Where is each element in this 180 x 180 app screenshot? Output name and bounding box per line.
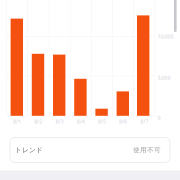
staticText: 使用不可: [133, 146, 161, 154]
staticText: 10,000: [157, 33, 173, 40]
staticText: トレンド: [15, 146, 43, 154]
staticText: 0: [157, 114, 160, 121]
staticText: 8/1: [13, 118, 21, 125]
staticText: 8/7: [140, 118, 148, 125]
staticText: 5,000: [157, 74, 170, 81]
staticText: 8/2: [34, 118, 42, 125]
button[interactable]: トレンド: [10, 137, 170, 162]
staticText: 8/5: [98, 118, 106, 125]
staticText: 8/3: [55, 118, 63, 125]
staticText: 8/4: [77, 118, 85, 125]
staticText: 8/6: [119, 118, 127, 125]
